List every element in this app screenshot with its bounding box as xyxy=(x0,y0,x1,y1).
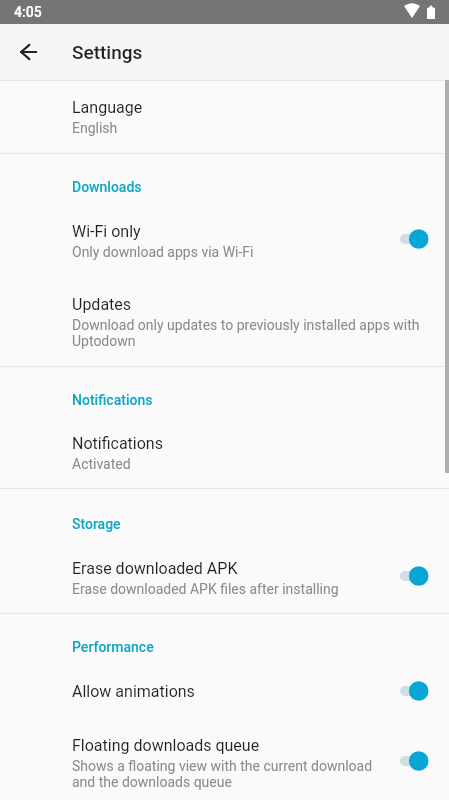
button[interactable]: Floating downloads queue xyxy=(0,722,449,800)
staticText: Wi-Fi only xyxy=(72,222,141,241)
staticText: English xyxy=(72,120,118,136)
button[interactable]: Notifications xyxy=(0,418,449,488)
staticText: Erase downloaded APK xyxy=(72,559,238,578)
staticText: 4:05 xyxy=(14,4,42,20)
staticText: Activated xyxy=(72,456,131,472)
staticText: Only download apps via Wi-Fi xyxy=(72,244,254,260)
staticText: Erase downloaded APK files after install… xyxy=(72,581,339,597)
staticText: Floating downloads queue xyxy=(72,736,260,755)
button[interactable]: Toggle xyxy=(393,559,439,593)
button[interactable]: Erase downloaded APK xyxy=(0,543,449,613)
button[interactable]: Updates xyxy=(0,278,449,366)
staticText: Storage xyxy=(72,516,121,532)
button[interactable]: Wi-Fi only xyxy=(0,206,449,278)
staticText: Updates xyxy=(72,295,132,314)
button[interactable]: Allow animations xyxy=(0,660,449,722)
button[interactable]: Toggle xyxy=(393,744,439,778)
button[interactable]: Toggle xyxy=(393,222,439,256)
staticText: Performance xyxy=(72,639,154,655)
staticText: Notifications xyxy=(72,392,153,408)
staticText: Language xyxy=(72,98,143,117)
staticText: Notifications xyxy=(72,434,163,453)
button[interactable]: Language xyxy=(0,81,449,153)
staticText: Allow animations xyxy=(72,682,195,701)
staticText: Settings xyxy=(72,41,143,63)
button[interactable]: Toggle xyxy=(393,674,439,708)
staticText: Downloads xyxy=(72,179,142,195)
staticText: Shows a floating view with the current d… xyxy=(72,758,393,790)
button[interactable]: Back xyxy=(8,32,48,72)
staticText: Download only updates to previously inst… xyxy=(72,317,439,349)
